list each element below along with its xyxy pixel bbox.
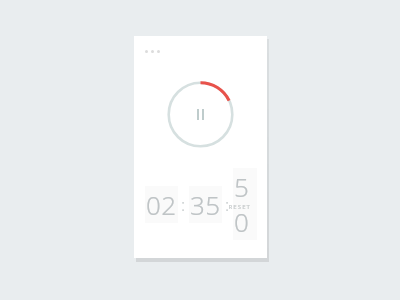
button[interactable]: Pause timer	[166, 80, 235, 149]
staticText: 35	[190, 187, 221, 222]
staticText: :	[181, 193, 186, 216]
staticText: 50	[234, 169, 256, 239]
button[interactable]: More options	[143, 48, 162, 55]
staticText: :	[225, 193, 230, 216]
staticText: RESET	[228, 203, 251, 211]
staticText: 02	[146, 187, 177, 222]
button[interactable]: RESET	[224, 200, 255, 214]
